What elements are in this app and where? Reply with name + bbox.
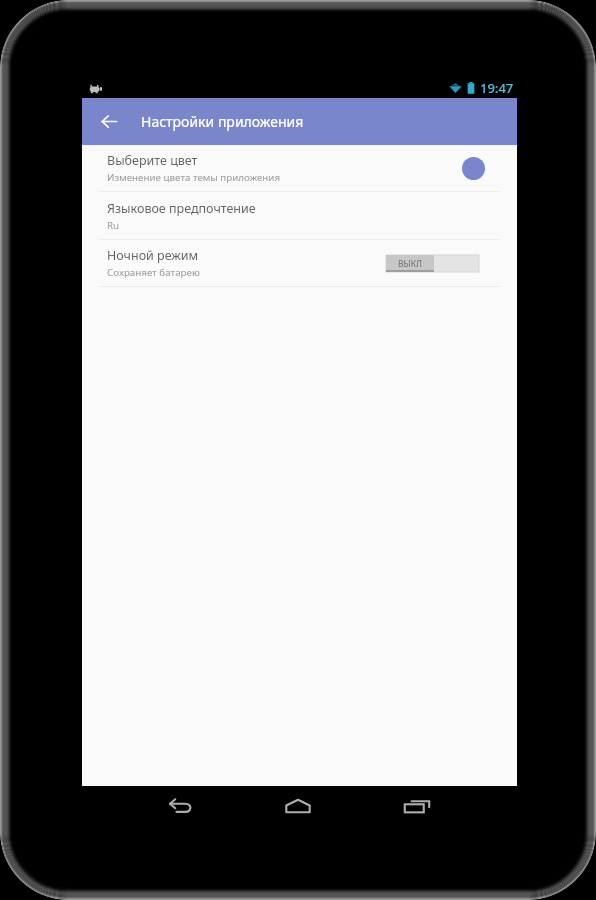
button[interactable]: Ночной режим xyxy=(82,240,517,286)
staticText: Языковое предпочтение xyxy=(107,200,256,217)
button[interactable]: Back xyxy=(153,786,205,826)
button[interactable]: Выберите цвет xyxy=(82,145,517,191)
staticText: 19:47 xyxy=(480,79,514,97)
staticText: Изменение цвета темы приложения xyxy=(107,171,281,184)
staticText: ВЫКЛ xyxy=(398,258,422,270)
staticText: Выберите цвет xyxy=(107,152,198,169)
button[interactable]: Языковое предпочтение xyxy=(82,192,517,239)
staticText: Настройки приложения xyxy=(141,112,304,131)
staticText: Ночной режим xyxy=(107,247,199,264)
staticText: Сохраняет батарею xyxy=(107,266,200,279)
button[interactable]: Night mode off xyxy=(386,255,479,272)
button[interactable]: Home xyxy=(272,786,324,826)
button[interactable]: Back xyxy=(82,98,126,145)
staticText: Ru xyxy=(107,219,120,232)
button[interactable]: Recent apps xyxy=(391,786,443,826)
button[interactable]: Choose colour xyxy=(456,154,485,183)
